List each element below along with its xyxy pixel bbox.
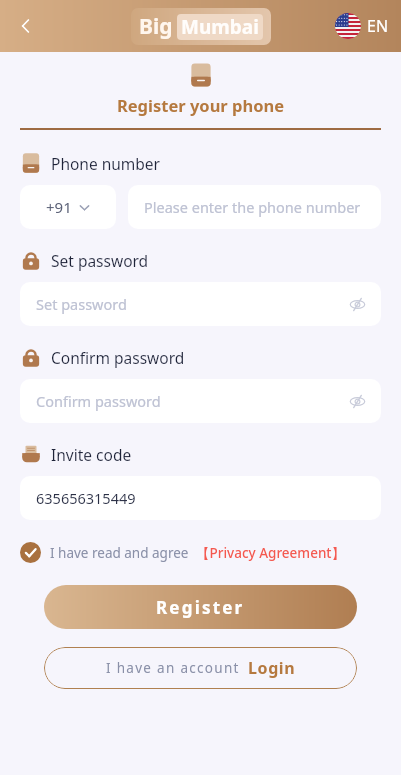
staticText: I have read and agree bbox=[50, 544, 189, 562]
button[interactable]: +91 bbox=[20, 185, 116, 229]
button[interactable]: Please enter the phone number bbox=[128, 185, 381, 229]
staticText: 635656315449 bbox=[36, 488, 136, 508]
button[interactable]: Set password bbox=[20, 282, 381, 326]
staticText: Login bbox=[248, 657, 296, 679]
button[interactable]: Toggle password visibility bbox=[348, 295, 367, 314]
staticText: Set password bbox=[51, 250, 149, 271]
button[interactable]: I have read and agree bbox=[20, 542, 346, 563]
staticText: Big bbox=[139, 12, 173, 41]
staticText: Register bbox=[156, 596, 245, 619]
button[interactable]: 635656315449 bbox=[20, 476, 381, 520]
staticText: Phone number bbox=[51, 153, 161, 174]
staticText: Register your phone bbox=[0, 94, 401, 116]
staticText: EN bbox=[367, 15, 389, 37]
button[interactable]: Back bbox=[8, 8, 44, 44]
staticText: Set password bbox=[36, 294, 127, 314]
staticText: Mumbai bbox=[181, 14, 259, 40]
button[interactable]: EN bbox=[335, 13, 389, 39]
staticText: I have an account bbox=[106, 659, 240, 677]
staticText: Please enter the phone number bbox=[144, 197, 361, 217]
staticText: Confirm password bbox=[36, 391, 161, 411]
staticText: +91 bbox=[46, 197, 72, 217]
button[interactable]: Confirm password bbox=[20, 379, 381, 423]
button[interactable]: Register bbox=[44, 585, 357, 629]
button[interactable]: Toggle password visibility bbox=[348, 392, 367, 411]
staticText: Invite code bbox=[51, 444, 132, 465]
button[interactable]: I have an account bbox=[44, 647, 357, 689]
staticText: 【Privacy Agreement】 bbox=[196, 544, 346, 562]
staticText: Confirm password bbox=[51, 347, 185, 368]
